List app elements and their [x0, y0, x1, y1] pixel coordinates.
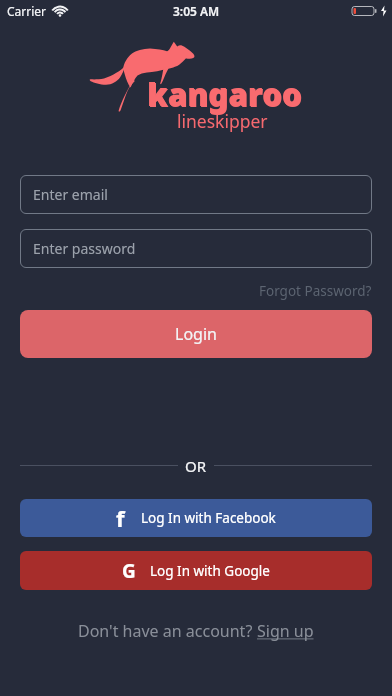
staticText: Forgot Password?	[259, 282, 372, 300]
staticText: Sign up	[257, 620, 314, 642]
button[interactable]: G	[20, 551, 372, 590]
staticText: Log In with Facebook	[141, 509, 276, 527]
staticText: Carrier	[7, 3, 47, 19]
button[interactable]: Enter email	[20, 175, 372, 214]
button[interactable]: Login	[20, 310, 372, 358]
staticText: Log In with Google	[150, 562, 270, 580]
button[interactable]: Enter password	[20, 229, 372, 268]
staticText: f	[116, 503, 125, 533]
staticText: kangaroo	[147, 73, 302, 115]
staticText: Enter email	[33, 185, 108, 204]
staticText: G	[122, 558, 136, 584]
staticText: lineskipper	[177, 109, 268, 133]
staticText: Enter password	[33, 239, 136, 258]
staticText: Login	[175, 323, 217, 345]
button[interactable]: Sign up	[257, 620, 314, 642]
staticText: 3:05 AM	[173, 3, 220, 19]
staticText: OR	[185, 456, 207, 476]
staticText: Don't have an account?	[78, 620, 257, 642]
staticText: kangaroo	[148, 74, 303, 116]
button[interactable]: f	[20, 499, 372, 537]
button[interactable]: Forgot Password?	[259, 282, 372, 300]
